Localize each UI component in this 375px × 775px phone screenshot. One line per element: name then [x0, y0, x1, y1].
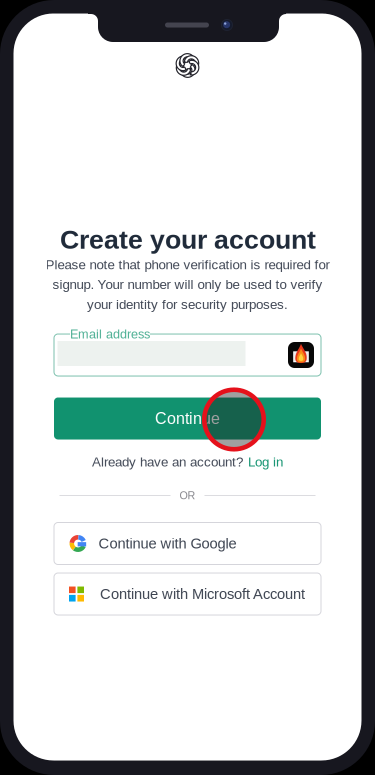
button[interactable]: Log in [248, 455, 283, 469]
staticText: Continue with Google [98, 535, 236, 552]
button[interactable]: Continue with Google [54, 522, 321, 564]
staticText: Email address [70, 327, 150, 341]
button[interactable]: Continue with Microsoft Account [54, 573, 321, 615]
staticText: your identity for security purposes. [87, 297, 288, 312]
staticText: Continue with Microsoft Account [100, 586, 305, 602]
staticText: Log in [248, 455, 283, 469]
button[interactable]: Continue [54, 397, 321, 439]
staticText: OR [179, 489, 195, 501]
staticText: Continue [155, 410, 220, 427]
staticText: Already have an account? [92, 455, 243, 469]
staticText: signup. Your number will only be used to… [52, 277, 322, 292]
staticText: Please note that phone verification is r… [45, 257, 329, 272]
staticText: Create your account [60, 225, 316, 254]
